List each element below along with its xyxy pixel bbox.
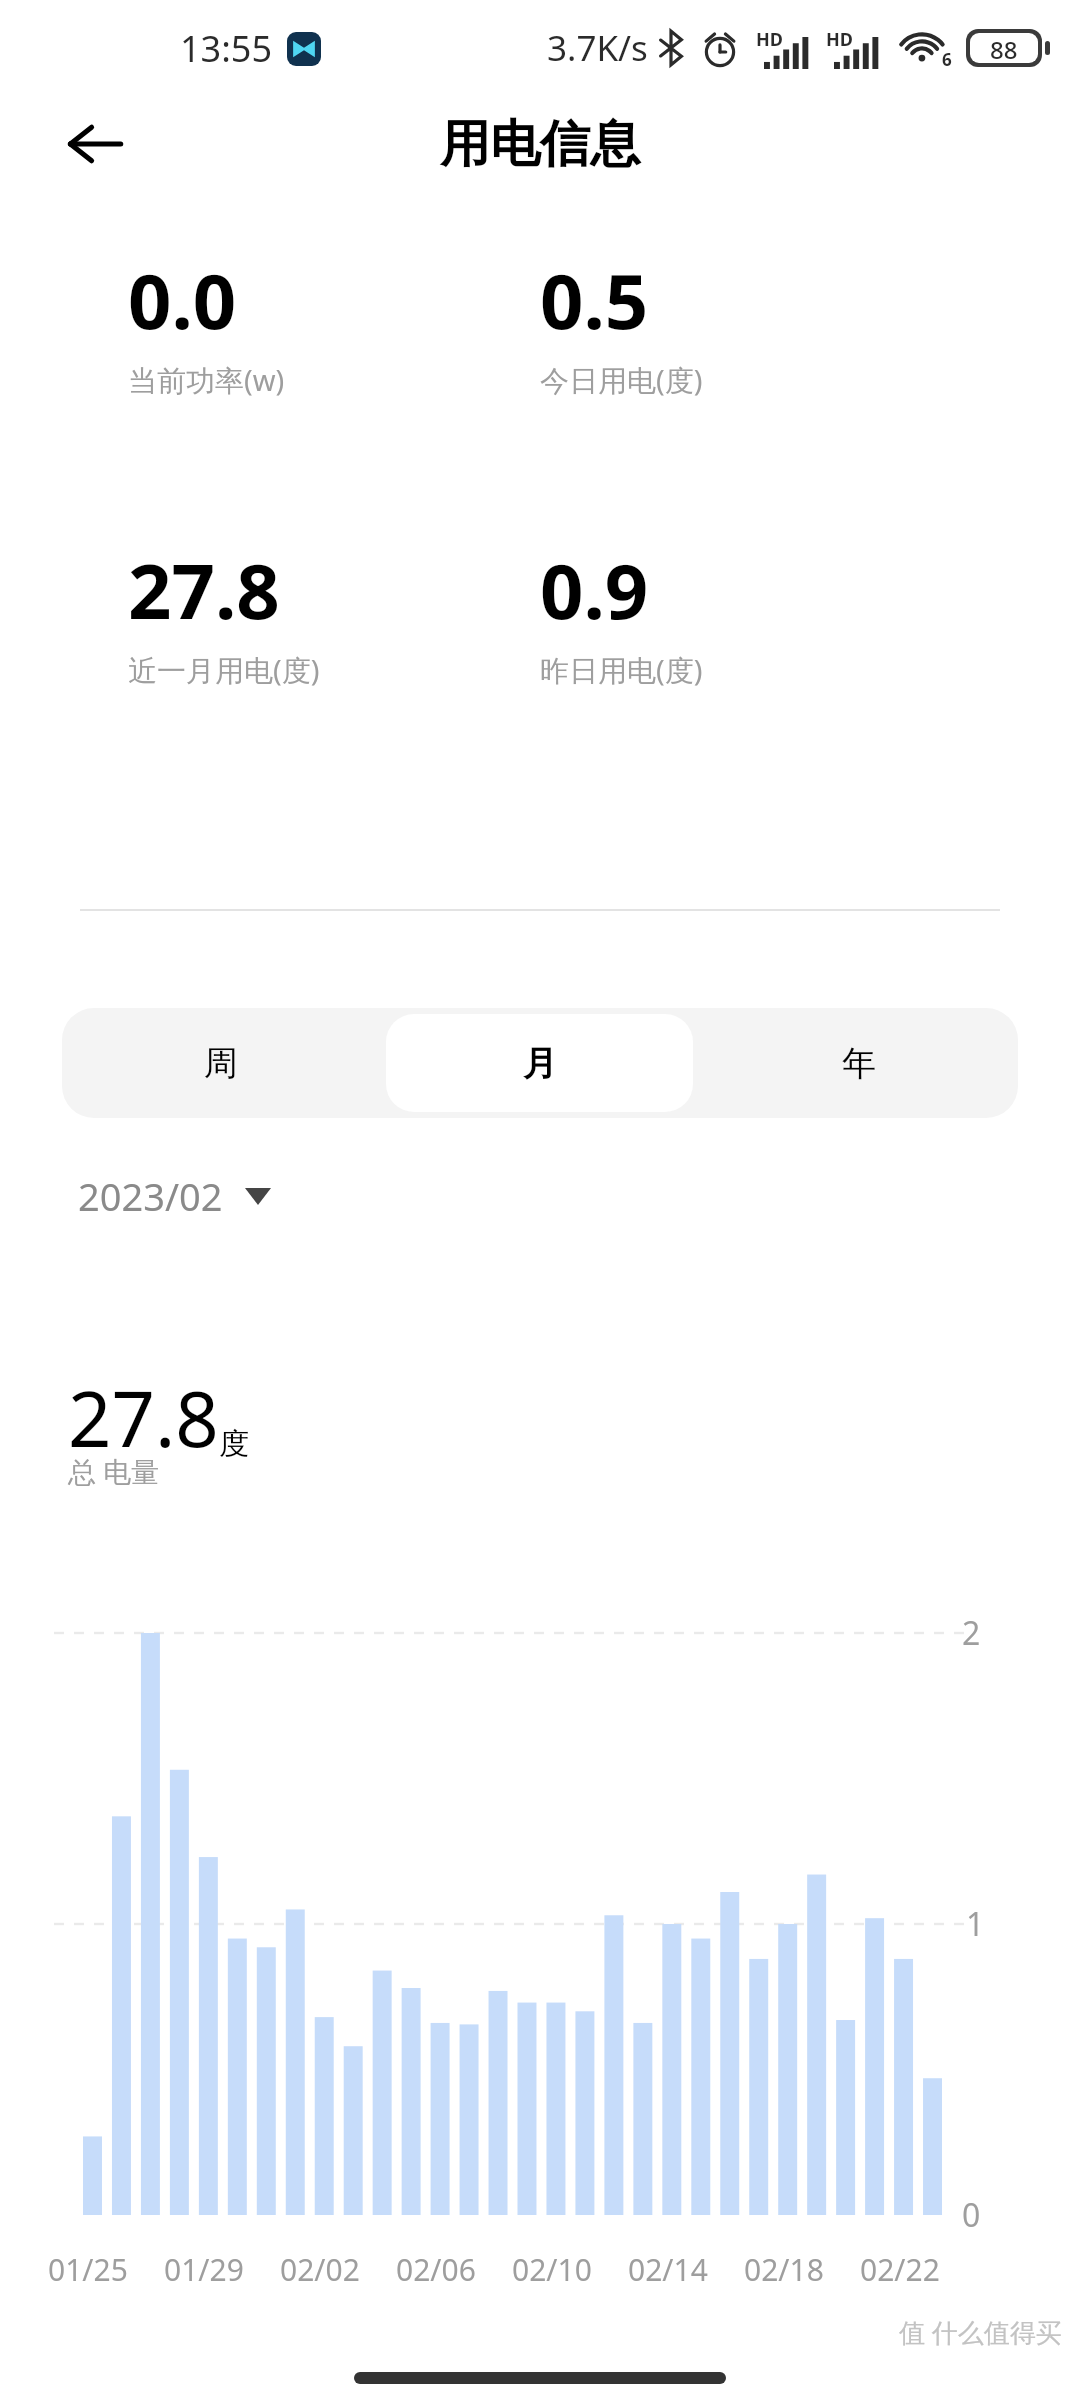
button[interactable]: Back (40, 96, 150, 192)
staticText: HD (826, 27, 853, 52)
staticText: 近一月用电(度) (128, 650, 320, 690)
staticText: 6 (942, 48, 952, 71)
staticText: 0.9 (540, 538, 649, 642)
staticText: 27.8 (128, 538, 280, 642)
staticText: 01/29 (164, 2249, 244, 2290)
staticText: 0 (962, 2193, 981, 2237)
staticText: 88 (990, 33, 1018, 63)
staticText: 值 什么值得买 (899, 2314, 1062, 2350)
staticText: 年 (842, 1042, 876, 1085)
staticText: 当前功率(w) (128, 360, 285, 400)
staticText: 02/02 (280, 2249, 360, 2290)
staticText: 1 (966, 1902, 985, 1946)
staticText: 周 (204, 1042, 238, 1085)
staticText: 27.8 (68, 1366, 219, 1470)
staticText: 0.0 (128, 248, 237, 352)
staticText: 02/10 (512, 2249, 592, 2290)
staticText: 13:55 (180, 24, 273, 73)
staticText: 用电信息 (440, 113, 640, 176)
staticText: 总 电量 (68, 1452, 160, 1490)
staticText: 02/22 (860, 2249, 940, 2290)
button[interactable]: 月 (386, 1014, 693, 1112)
staticText: 02/14 (628, 2249, 708, 2290)
staticText: 02/18 (744, 2249, 824, 2290)
staticText: 2 (962, 1611, 981, 1655)
staticText: 02/06 (396, 2249, 476, 2290)
staticText: HD (756, 27, 783, 52)
staticText: 01/25 (48, 2249, 128, 2290)
button[interactable]: 周 (68, 1014, 374, 1112)
staticText: 今日用电(度) (540, 360, 703, 400)
staticText: 3.7K/s (547, 24, 648, 72)
staticText: 度 (219, 1425, 249, 1463)
button[interactable]: 年 (705, 1014, 1012, 1112)
button[interactable]: 2023/02 (62, 1160, 289, 1232)
staticText: 月 (523, 1042, 557, 1085)
staticText: 昨日用电(度) (540, 650, 703, 690)
staticText: 2023/02 (78, 1170, 223, 1222)
staticText: 0.5 (540, 248, 649, 352)
